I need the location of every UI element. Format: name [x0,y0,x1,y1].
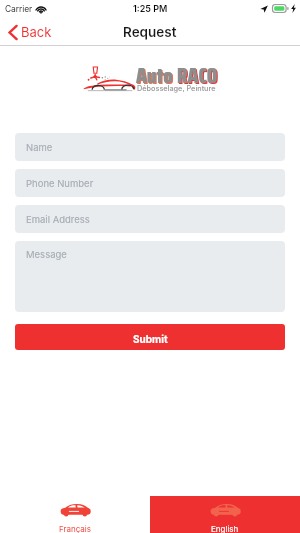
staticText: Français [59,524,92,533]
button[interactable]: Back [0,21,58,43]
staticText: Name [26,142,53,153]
staticText: Back [21,24,52,40]
staticText: Request [123,24,177,40]
button[interactable]: Phone Number [15,169,285,197]
button[interactable]: Submit [15,324,285,350]
staticText: Débosselage, Peinture [137,84,216,93]
button[interactable]: Message [15,241,285,312]
staticText: English [211,524,239,533]
button[interactable]: Email Address [15,205,285,233]
staticText: Email Address [26,214,90,225]
button[interactable]: Name [15,133,285,161]
staticText: Auto [136,59,177,92]
staticText: Phone Number [26,178,94,189]
staticText: Message [26,249,67,260]
button[interactable]: English [150,496,300,533]
staticText: Carrier [5,4,33,14]
staticText: 1:25 PM [133,3,168,14]
button[interactable]: Français [0,496,150,533]
staticText: Submit [133,333,168,345]
staticText: Auto [137,60,178,93]
staticText: RACO [178,60,219,93]
staticText: RACO [177,59,218,92]
